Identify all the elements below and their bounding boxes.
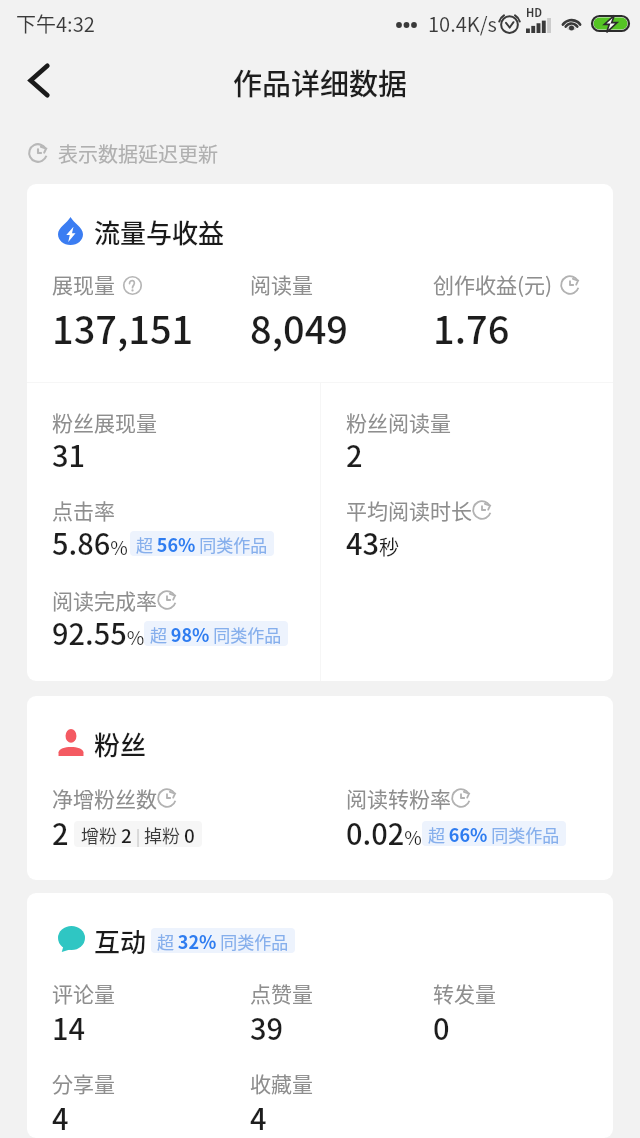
staticText: 4	[52, 1096, 69, 1138]
staticText: 137,151	[52, 300, 194, 355]
staticText: 展现量	[52, 269, 115, 299]
staticText: 粉丝展现量	[52, 407, 157, 437]
staticText: 增粉 2 | 掉粉 0	[81, 821, 195, 847]
staticText: 阅读量	[250, 269, 313, 299]
staticText: 阅读完成率	[52, 585, 157, 615]
staticText: 点击率	[52, 495, 115, 525]
staticText: 0	[433, 1006, 450, 1048]
staticText: HD	[526, 4, 543, 20]
staticText: 粉丝阅读量	[346, 407, 451, 437]
staticText: 表示数据延迟更新	[58, 139, 218, 168]
staticText: 评论量	[52, 978, 115, 1008]
staticText: 转发量	[433, 978, 496, 1008]
staticText: 粉丝	[94, 725, 147, 763]
staticText: 31	[52, 433, 86, 475]
staticText: 超 98% 同类作品	[150, 621, 282, 646]
staticText: 92.55%	[52, 611, 145, 653]
staticText: 4	[250, 1096, 267, 1138]
staticText: 收藏量	[250, 1068, 313, 1098]
staticText: 2	[52, 811, 69, 853]
staticText: 作品详细数据	[233, 61, 408, 103]
staticText: 超 66% 同类作品	[428, 821, 560, 846]
staticText: 下午4:32	[16, 9, 95, 38]
staticText: 互动	[94, 922, 147, 960]
button[interactable]: 返回	[7, 48, 71, 112]
staticText: 超 56% 同类作品	[136, 531, 268, 556]
staticText: 净增粉丝数	[52, 783, 157, 813]
staticText: 43秒	[346, 521, 400, 563]
staticText: 39	[250, 1006, 284, 1048]
staticText: 分享量	[52, 1068, 115, 1098]
staticText: 8,049	[250, 300, 348, 355]
staticText: 10.4K/s	[428, 9, 497, 38]
staticText: 创作收益(元)	[433, 269, 553, 299]
staticText: 14	[52, 1006, 86, 1048]
staticText: 平均阅读时长	[346, 495, 472, 525]
staticText: 阅读转粉率	[346, 783, 451, 813]
staticText: 流量与收益	[94, 213, 225, 251]
staticText: 点赞量	[250, 978, 313, 1008]
staticText: 5.86%	[52, 521, 128, 563]
staticText: 超 32% 同类作品	[157, 928, 289, 953]
staticText: 0.02%	[346, 811, 422, 853]
staticText: 2	[346, 433, 363, 475]
staticText: 1.76	[433, 300, 510, 355]
